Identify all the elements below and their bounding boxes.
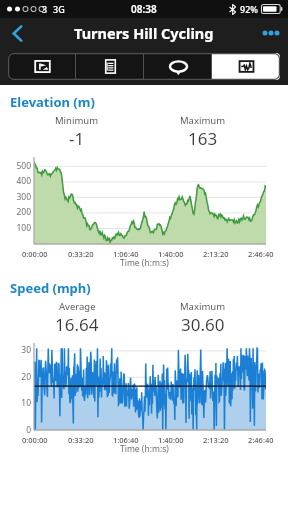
staticText: 2:46:40 bbox=[248, 435, 274, 445]
staticText: Time (h:m:s) bbox=[120, 257, 169, 269]
staticText: 0 bbox=[26, 424, 31, 436]
button[interactable]: Graphs bbox=[212, 53, 280, 80]
staticText: 200 bbox=[16, 206, 31, 218]
staticText: 08:38 bbox=[131, 2, 157, 16]
button[interactable]: Laps bbox=[144, 53, 212, 80]
button[interactable]: More options bbox=[254, 18, 288, 48]
staticText: 2:46:40 bbox=[248, 249, 274, 259]
button[interactable]: Back bbox=[0, 18, 34, 48]
staticText: 3G bbox=[53, 3, 65, 15]
staticText: 16.64 bbox=[55, 313, 99, 336]
staticText: 0:00:00 bbox=[22, 435, 48, 445]
staticText: 163 bbox=[188, 127, 218, 150]
staticText: Elevation (m) bbox=[10, 93, 95, 111]
staticText: 500 bbox=[16, 160, 31, 172]
staticText: 10 bbox=[21, 397, 31, 409]
staticText: 0:00:00 bbox=[22, 249, 48, 259]
staticText: 92% bbox=[240, 3, 258, 15]
staticText: 100 bbox=[16, 222, 31, 234]
staticText: 300 bbox=[16, 191, 31, 203]
staticText: -1 bbox=[69, 127, 85, 150]
staticText: Maximum bbox=[180, 300, 226, 313]
staticText: Turners Hill Cycling bbox=[74, 23, 214, 43]
staticText: 1:06:40 bbox=[113, 249, 139, 259]
staticText: 0:33:20 bbox=[68, 435, 94, 445]
staticText: 1:06:40 bbox=[113, 435, 139, 445]
staticText: Minimum bbox=[55, 114, 99, 127]
staticText: Average bbox=[59, 300, 96, 313]
staticText: Maximum bbox=[180, 114, 226, 127]
staticText: 2:13:20 bbox=[203, 249, 229, 259]
staticText: 2:13:20 bbox=[203, 435, 229, 445]
staticText: 30 bbox=[21, 344, 31, 356]
staticText: 20 bbox=[21, 371, 31, 383]
staticText: 0:33:20 bbox=[68, 249, 94, 259]
staticText: 1:40:00 bbox=[158, 435, 184, 445]
staticText: 30.60 bbox=[181, 313, 225, 336]
button[interactable]: Details bbox=[76, 53, 144, 80]
staticText: 1:40:00 bbox=[158, 249, 184, 259]
button[interactable]: Map bbox=[8, 53, 76, 80]
staticText: Speed (mph) bbox=[10, 279, 91, 297]
staticText: 3 bbox=[42, 3, 48, 15]
staticText: Time (h:m:s) bbox=[120, 443, 169, 455]
staticText: 400 bbox=[16, 175, 31, 187]
